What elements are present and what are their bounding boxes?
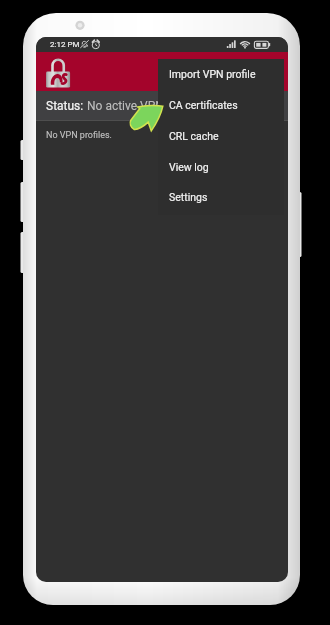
staticText: 2:12 PM: [50, 40, 80, 49]
button[interactable]: Import VPN profile: [158, 59, 284, 89]
button[interactable]: CRL cache: [158, 121, 284, 151]
staticText: Status:: [46, 99, 87, 113]
button[interactable]: View log: [158, 152, 284, 182]
staticText: No active VPN: [87, 99, 164, 113]
button[interactable]: Settings: [158, 182, 284, 212]
button[interactable]: CA certificates: [158, 90, 284, 120]
staticText: Settings: [169, 191, 208, 203]
staticText: View log: [169, 161, 209, 173]
button[interactable]: strongSwan: [46, 58, 73, 90]
staticText: CRL cache: [169, 130, 219, 142]
staticText: No VPN profiles.: [46, 130, 112, 141]
staticText: Import VPN profile: [169, 68, 256, 80]
staticText: CA certificates: [169, 99, 238, 111]
